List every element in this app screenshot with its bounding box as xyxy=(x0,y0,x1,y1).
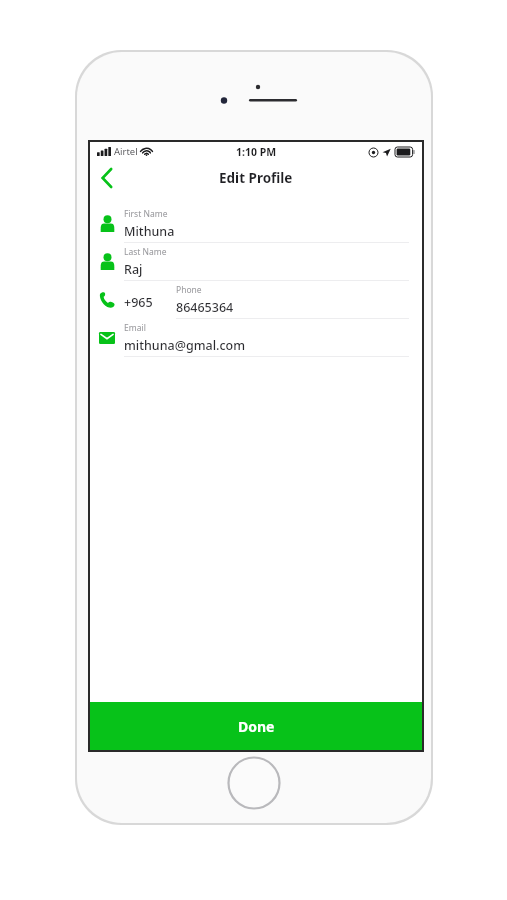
staticText: Done xyxy=(238,717,275,736)
button[interactable]: First Name xyxy=(90,205,422,243)
staticText: Airtel xyxy=(114,145,138,158)
button[interactable]: Email xyxy=(90,319,422,357)
staticText: 86465364 xyxy=(176,299,234,316)
staticText: Mithuna xyxy=(124,223,175,240)
staticText: 1:10 PM xyxy=(236,145,277,159)
staticText: Last Name xyxy=(124,246,167,258)
button[interactable]: Done xyxy=(90,702,422,750)
staticText: First Name xyxy=(124,208,168,220)
button[interactable]: Last Name xyxy=(90,243,422,281)
button[interactable]: Back xyxy=(90,161,124,195)
staticText: Raj xyxy=(124,261,143,278)
staticText: +965 xyxy=(124,294,153,311)
button[interactable]: +965 xyxy=(90,281,422,319)
staticText: Phone xyxy=(176,284,202,296)
staticText: Edit Profile xyxy=(219,169,293,187)
staticText: Email xyxy=(124,322,146,334)
staticText: mithuna@gmal.com xyxy=(124,337,246,354)
